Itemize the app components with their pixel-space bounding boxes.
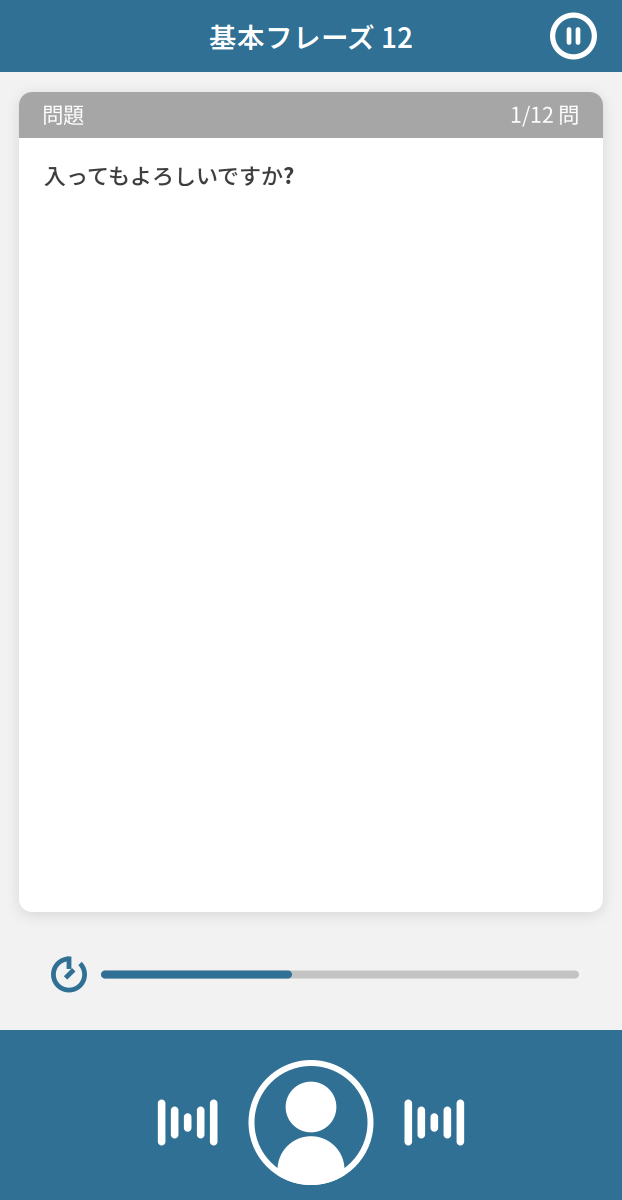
staticText: 基本フレーズ 12: [209, 16, 413, 56]
staticText: 1/12 問: [510, 98, 579, 129]
button[interactable]: Listen to audio: [158, 1099, 217, 1145]
button[interactable]: Pause: [550, 12, 622, 59]
staticText: 問題: [42, 98, 84, 129]
button[interactable]: Speak: [248, 1060, 373, 1185]
staticText: 入ってもよろしいですか?: [44, 159, 294, 190]
button[interactable]: Record your voice: [404, 1099, 464, 1145]
